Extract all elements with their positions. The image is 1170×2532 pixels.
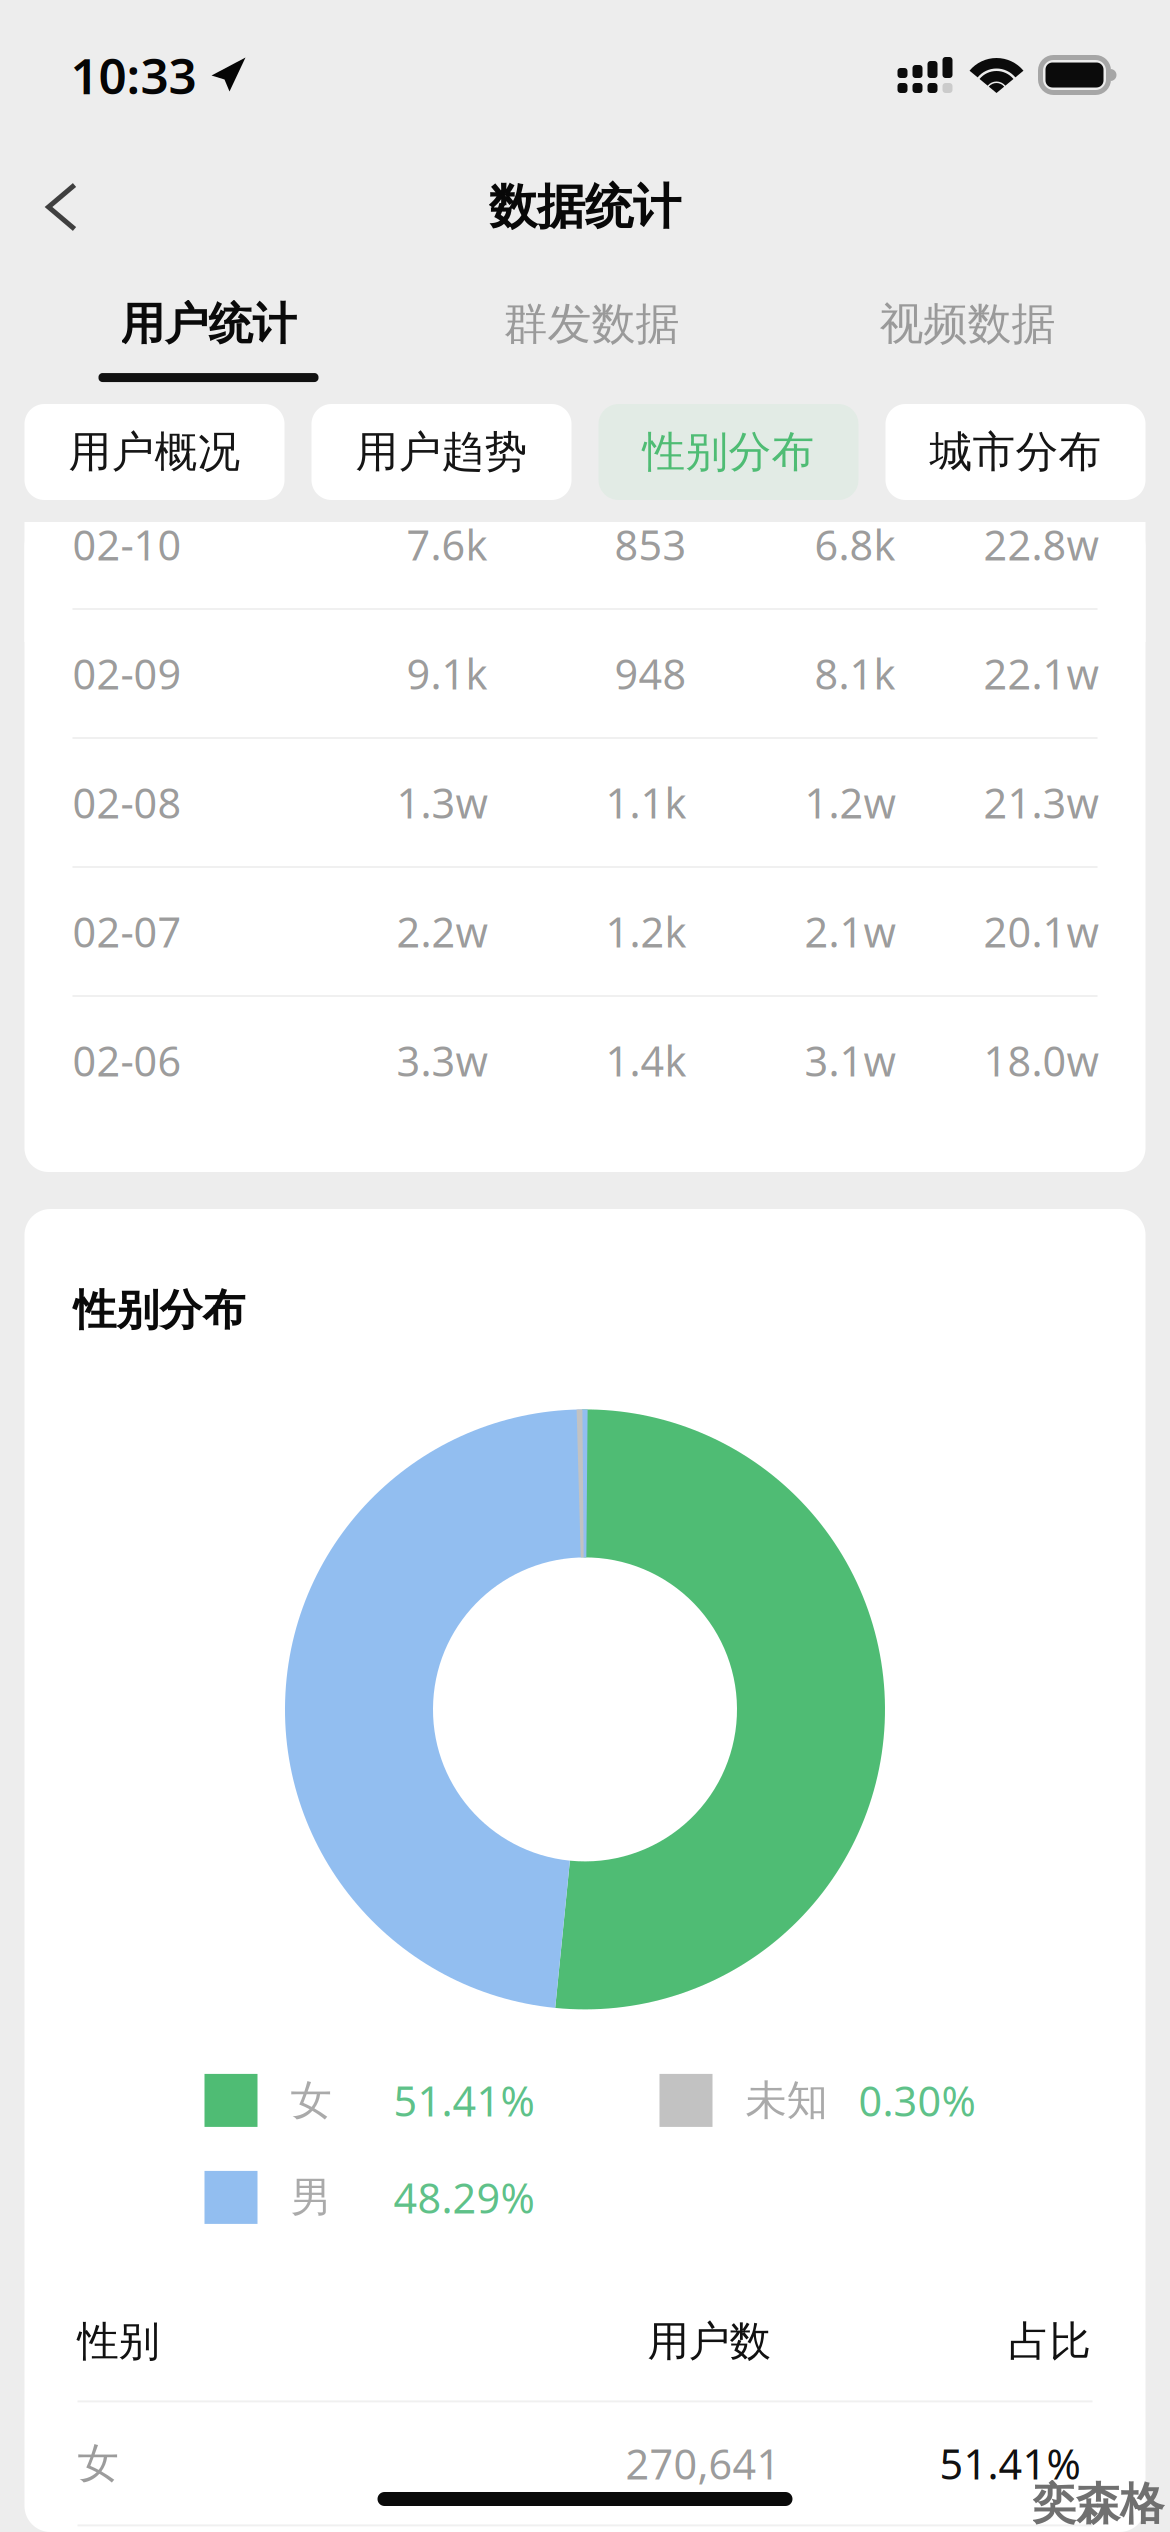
- staticText: 02-08: [72, 775, 181, 830]
- staticText: 用户数: [647, 2316, 770, 2367]
- staticText: 20.1w: [983, 904, 1098, 959]
- staticText: 18.0w: [983, 1033, 1098, 1088]
- staticText: 1.2k: [605, 904, 686, 959]
- staticText: 女: [77, 2438, 118, 2489]
- staticText: 270,641: [625, 2436, 780, 2491]
- staticText: 用户概况: [68, 426, 240, 478]
- staticText: 02-07: [72, 904, 181, 959]
- staticText: 用户趋势: [355, 426, 527, 478]
- staticText: 22.1w: [983, 646, 1098, 701]
- staticText: 1.3w: [396, 775, 487, 830]
- staticText: 女: [290, 2075, 331, 2126]
- staticText: 0.30%: [858, 2073, 975, 2128]
- staticText: 3.3w: [396, 1033, 487, 1088]
- staticText: 城市分布: [929, 426, 1101, 478]
- staticText: 1.2w: [804, 775, 895, 830]
- staticText: 占比: [1008, 2316, 1090, 2367]
- staticText: 2.1w: [804, 904, 895, 959]
- button[interactable]: 性别分布: [598, 404, 858, 500]
- staticText: 10:33: [70, 42, 196, 108]
- button[interactable]: 女: [24, 2402, 1145, 2524]
- staticText: 6.8k: [814, 517, 895, 572]
- button[interactable]: 视频数据: [779, 264, 1155, 390]
- staticText: 948: [614, 646, 686, 701]
- staticText: 02-10: [72, 517, 181, 572]
- button[interactable]: 群发数据: [403, 264, 779, 390]
- staticText: 1.4k: [605, 1033, 686, 1088]
- staticText: 8.1k: [814, 646, 895, 701]
- staticText: 数据统计: [489, 177, 681, 236]
- staticText: 群发数据: [503, 297, 679, 351]
- button[interactable]: 用户概况: [24, 404, 284, 500]
- staticText: 性别: [77, 2316, 159, 2367]
- button[interactable]: Back: [15, 160, 107, 254]
- staticText: 3.1w: [804, 1033, 895, 1088]
- button[interactable]: 城市分布: [885, 404, 1145, 500]
- staticText: 51.41%: [393, 2073, 534, 2128]
- staticText: 51.41%: [939, 2436, 1080, 2491]
- staticText: 性别分布: [642, 426, 814, 478]
- staticText: 7.6k: [406, 517, 487, 572]
- staticText: 1.1k: [605, 775, 686, 830]
- staticText: 性别分布: [73, 1284, 245, 1336]
- staticText: 02-09: [72, 646, 181, 701]
- button[interactable]: 用户统计: [13, 264, 403, 390]
- staticText: 奕森格: [1032, 2477, 1164, 2531]
- staticText: 22.8w: [983, 517, 1098, 572]
- staticText: 9.1k: [406, 646, 487, 701]
- staticText: 视频数据: [879, 297, 1055, 351]
- staticText: 21.3w: [983, 775, 1098, 830]
- staticText: 2.2w: [396, 904, 487, 959]
- staticText: 48.29%: [393, 2170, 534, 2225]
- staticText: 未知: [745, 2075, 827, 2126]
- staticText: 用户统计: [120, 297, 296, 351]
- staticText: 853: [614, 517, 686, 572]
- staticText: 02-06: [72, 1033, 181, 1088]
- staticText: 男: [290, 2172, 331, 2223]
- button[interactable]: 用户趋势: [311, 404, 571, 500]
